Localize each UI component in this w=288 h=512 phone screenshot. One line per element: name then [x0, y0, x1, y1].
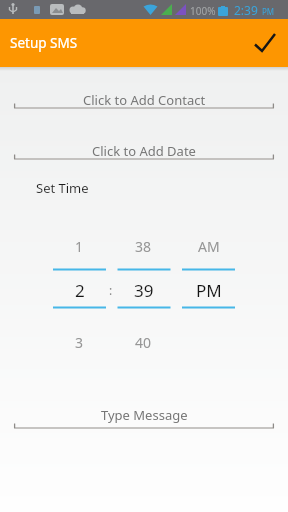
button[interactable]: Type Message	[0, 404, 288, 426]
staticText: PM	[262, 6, 275, 17]
staticText: Set Time	[36, 179, 89, 197]
staticText: 1	[75, 237, 84, 256]
staticText: 39	[134, 279, 154, 302]
staticText: PM	[196, 279, 222, 302]
staticText: Setup SMS	[10, 34, 78, 52]
staticText: 100%	[190, 4, 216, 18]
staticText: Type Message	[101, 406, 188, 424]
staticText: AM	[198, 237, 220, 256]
button[interactable]	[242, 19, 288, 67]
staticText: Click to Add Date	[92, 142, 196, 160]
staticText: 2	[75, 279, 85, 302]
staticText: :	[109, 282, 113, 298]
staticText: 3	[75, 333, 84, 352]
staticText: 2:39	[234, 2, 258, 18]
staticText: 38	[135, 237, 152, 256]
button[interactable]: 39	[117, 277, 170, 303]
staticText: Click to Add Contact	[83, 91, 206, 109]
button[interactable]: PM	[182, 277, 235, 303]
button[interactable]: Click to Add Date	[0, 140, 288, 162]
button[interactable]: 2	[53, 277, 106, 303]
staticText: 40	[135, 333, 152, 352]
button[interactable]: Click to Add Contact	[0, 89, 288, 111]
